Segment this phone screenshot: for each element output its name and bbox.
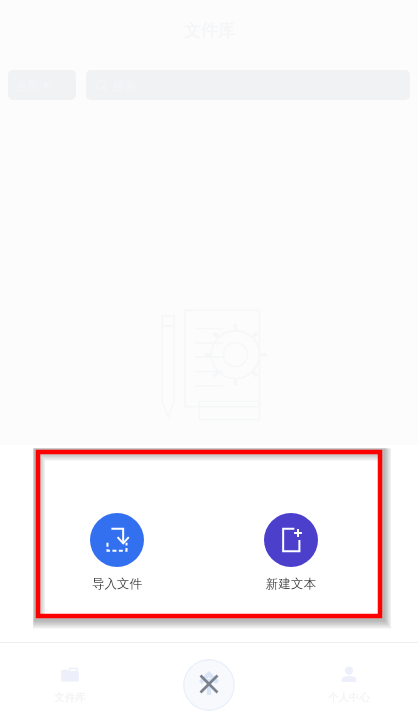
staticText: 个人中心: [328, 691, 370, 704]
staticText: 新建文本: [266, 576, 316, 592]
button[interactable]: 导入文件: [80, 509, 154, 596]
staticText: 您还没有文档信息，点击下方"+"尝试导入: [99, 450, 320, 466]
button[interactable]: 新建文本: [254, 509, 328, 596]
staticText: 文件库: [54, 691, 86, 704]
button[interactable]: 文件库: [0, 642, 140, 719]
button[interactable]: Close: [183, 659, 235, 711]
staticText: 导入文件: [92, 576, 142, 592]
